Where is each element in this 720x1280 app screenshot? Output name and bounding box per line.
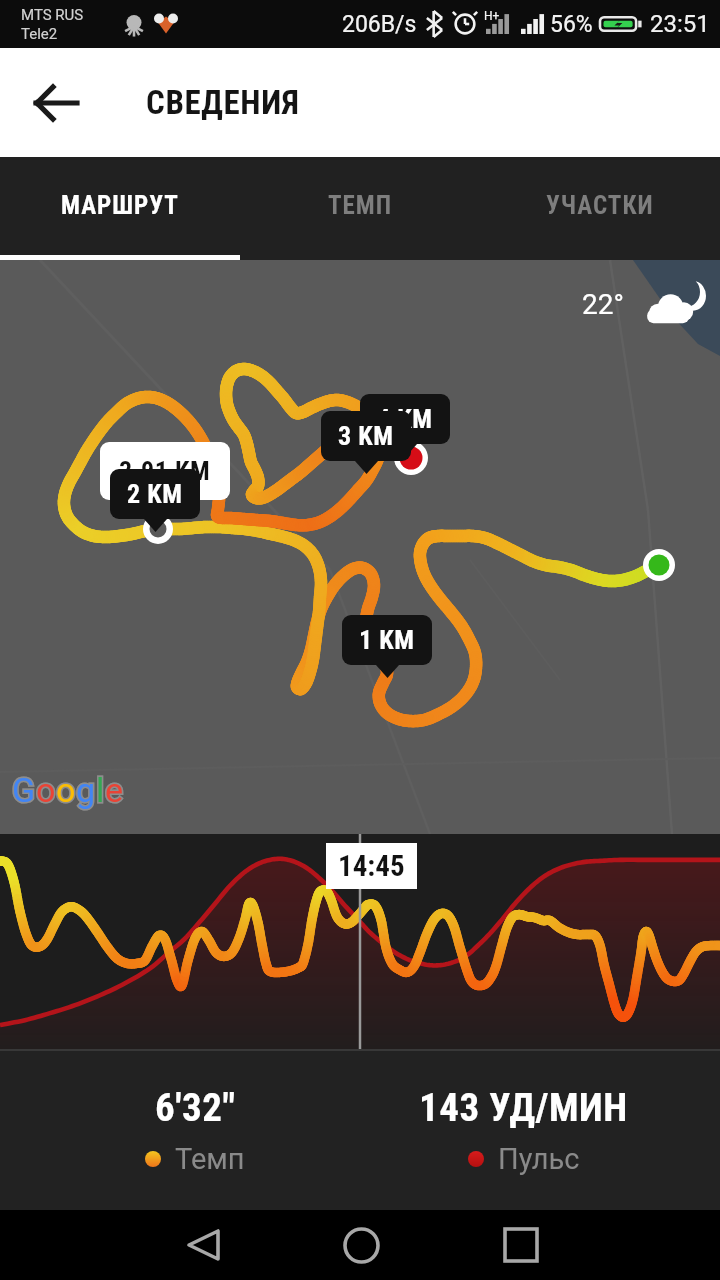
button[interactable]: 6'32"	[15, 1051, 375, 1210]
button[interactable]: 2 KM	[110, 469, 200, 519]
button[interactable]: 143 УД/МИН	[343, 1051, 703, 1210]
button[interactable]: МАРШРУТ	[0, 157, 240, 260]
staticText: Tele2	[21, 25, 58, 43]
button[interactable]: Home	[325, 1210, 397, 1280]
button[interactable]: Recents	[485, 1210, 557, 1280]
staticText: 14:45	[338, 849, 405, 883]
staticText: o	[36, 770, 56, 810]
staticText: l	[96, 770, 105, 810]
staticText: ТЕМП	[328, 191, 393, 220]
staticText: 1 KM	[359, 625, 415, 655]
staticText: Темп	[175, 1142, 245, 1176]
staticText: MTS RUS	[21, 6, 84, 24]
button[interactable]: Back	[22, 69, 90, 137]
staticText: 3 KM	[338, 421, 394, 451]
staticText: УЧАСТКИ	[546, 191, 654, 220]
staticText: СВЕДЕНИЯ	[146, 83, 300, 122]
staticText: 2 KM	[127, 479, 183, 509]
staticText: o	[56, 770, 76, 810]
staticText: g	[76, 770, 96, 810]
button[interactable]: 3.91 KM	[100, 442, 230, 500]
staticText: G	[12, 770, 36, 810]
staticText: o	[36, 770, 56, 810]
button[interactable]: 3 KM	[321, 411, 411, 461]
staticText: 4 KM	[377, 404, 433, 434]
staticText: H+	[484, 9, 500, 23]
button[interactable]: 1 KM	[342, 615, 432, 665]
staticText: G	[12, 770, 36, 810]
staticText: 3.91 KM	[119, 456, 211, 486]
staticText: e	[105, 770, 124, 810]
staticText: 143 УД/МИН	[419, 1085, 628, 1131]
staticText: l	[96, 770, 105, 810]
staticText: Пульс	[498, 1142, 580, 1176]
staticText: 56%	[550, 11, 593, 38]
staticText: 6'32"	[155, 1085, 236, 1131]
staticText: e	[105, 770, 124, 810]
button[interactable]: Back	[167, 1210, 239, 1280]
staticText: g	[76, 770, 96, 810]
staticText: 23:51	[650, 10, 710, 38]
staticText: 206B/s	[342, 11, 417, 38]
button[interactable]: УЧАСТКИ	[480, 157, 720, 260]
staticText: 22°	[582, 288, 624, 321]
button[interactable]: 14:45	[326, 843, 417, 889]
button[interactable]: ТЕМП	[240, 157, 480, 260]
button[interactable]: 4 KM	[360, 394, 450, 444]
staticText: o	[56, 770, 76, 810]
staticText: МАРШРУТ	[61, 191, 179, 220]
